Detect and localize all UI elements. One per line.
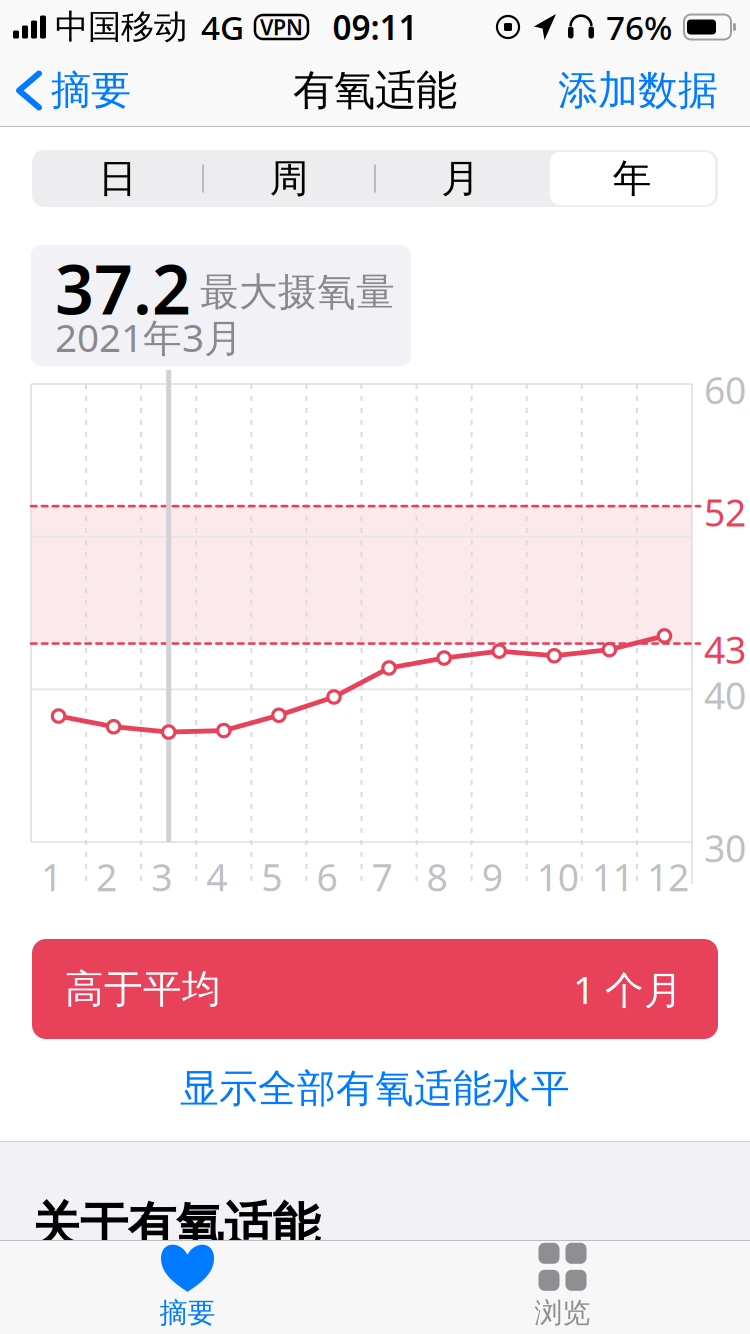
button[interactable]: 添加数据 — [558, 56, 750, 125]
staticText: 9 — [482, 852, 503, 902]
staticText: 4 — [206, 852, 227, 902]
staticText: 60 — [704, 365, 746, 415]
staticText: 最大摄氧量 — [200, 268, 395, 316]
staticText: 43 — [704, 624, 746, 674]
staticText: 周 — [270, 155, 309, 202]
staticText: 12 — [647, 852, 689, 902]
staticText: 年 — [613, 155, 652, 202]
staticText: 浏览 — [534, 1296, 590, 1330]
staticText: 7 — [371, 852, 392, 902]
staticText: 日 — [98, 155, 137, 202]
staticText: 1 个月 — [573, 963, 683, 1015]
staticText: 8 — [427, 852, 448, 902]
staticText: 月 — [441, 155, 480, 202]
button[interactable]: 周 — [203, 150, 375, 207]
staticText: 高于平均 — [65, 965, 221, 1013]
staticText: VPN — [260, 13, 303, 41]
staticText: 30 — [704, 823, 746, 873]
staticText: 2 — [96, 852, 117, 902]
staticText: 6 — [316, 852, 337, 902]
button[interactable]: 月 — [375, 150, 546, 207]
staticText: 摘要 — [51, 66, 131, 115]
staticText: 添加数据 — [558, 66, 718, 115]
staticText: 11 — [592, 852, 634, 902]
staticText: 4G — [201, 5, 244, 49]
staticText: 关于有氧适能 — [32, 1196, 320, 1255]
staticText: 2021年3月 — [55, 311, 243, 363]
staticText: 有氧适能 — [293, 65, 457, 116]
staticText: 显示全部有氧适能水平 — [180, 1065, 570, 1112]
staticText: 40 — [704, 670, 746, 720]
button[interactable]: 年 — [546, 150, 718, 207]
button[interactable]: 浏览 — [375, 1234, 750, 1334]
staticText: 76% — [606, 5, 672, 49]
button[interactable]: 高于平均 — [0, 939, 750, 1039]
staticText: 5 — [261, 852, 282, 902]
button[interactable]: 摘要 — [0, 1234, 375, 1334]
button[interactable]: 摘要 — [0, 56, 131, 125]
staticText: 09:11 — [332, 5, 417, 49]
staticText: 中国移动 — [55, 6, 187, 47]
staticText: 37.2 — [55, 243, 191, 333]
button[interactable]: 显示全部有氧适能水平 — [0, 1040, 750, 1137]
button[interactable]: 日 — [32, 150, 203, 207]
staticText: 1 — [41, 852, 62, 902]
staticText: 10 — [537, 852, 579, 902]
staticText: 摘要 — [159, 1296, 215, 1330]
staticText: 3 — [151, 852, 172, 902]
staticText: 52 — [704, 487, 746, 537]
